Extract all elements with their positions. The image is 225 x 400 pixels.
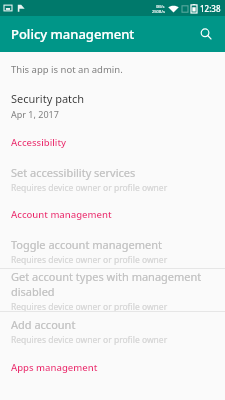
staticText: Accessibility bbox=[11, 136, 67, 149]
staticText: Requires device owner or profile owner bbox=[11, 182, 168, 194]
staticText: Requires device owner or profile owner bbox=[11, 301, 168, 311]
button[interactable]: Toggle account management bbox=[0, 234, 225, 268]
staticText: Apps management bbox=[11, 361, 98, 374]
button[interactable]: Get account types with management disabl… bbox=[0, 269, 225, 311]
button[interactable]: Accessibility bbox=[0, 124, 225, 162]
staticText: Security patch bbox=[11, 91, 85, 106]
staticText: Requires device owner or profile owner bbox=[11, 334, 168, 346]
staticText: Apr 1, 2017 bbox=[11, 108, 59, 120]
staticText: Get account types with management disabl… bbox=[11, 269, 217, 299]
button[interactable]: Add account bbox=[0, 312, 225, 350]
staticText: 0B/s bbox=[156, 4, 165, 9]
staticText: Account management bbox=[11, 208, 112, 221]
staticText: 250B/s bbox=[152, 9, 165, 14]
staticText: This app is not an admin. bbox=[11, 63, 123, 76]
staticText: Policy management bbox=[11, 25, 135, 43]
button[interactable]: Search bbox=[193, 21, 219, 47]
button[interactable]: Apps management bbox=[0, 350, 225, 380]
button[interactable]: Security patch bbox=[0, 86, 225, 124]
button[interactable]: Set accessibility services bbox=[0, 162, 225, 196]
staticText: Toggle account management bbox=[11, 237, 162, 252]
staticText: Set accessibility services bbox=[11, 165, 136, 180]
staticText: Requires device owner or profile owner bbox=[11, 254, 168, 266]
staticText: Add account bbox=[11, 317, 76, 332]
staticText: 12:38 bbox=[200, 3, 221, 14]
button[interactable]: Account management bbox=[0, 196, 225, 234]
